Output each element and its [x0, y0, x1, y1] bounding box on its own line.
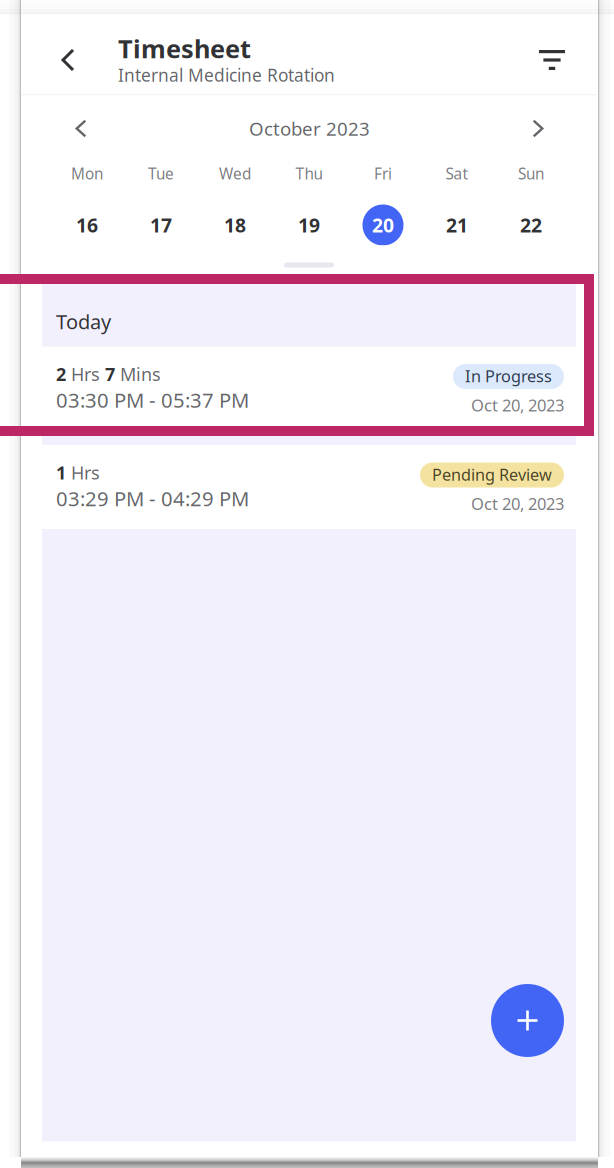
staticText: Hrs [66, 362, 100, 386]
button[interactable]: Tue [124, 161, 198, 245]
button[interactable]: 1 [21, 445, 597, 529]
staticText: Tue [148, 163, 174, 184]
button[interactable]: Mon [50, 161, 124, 245]
button[interactable]: Fri [346, 161, 420, 245]
staticText: 16 [76, 212, 98, 238]
staticText: In Progress [465, 365, 552, 387]
staticText: Today [56, 308, 111, 335]
staticText: Wed [219, 163, 251, 184]
staticText: 20 [372, 212, 394, 238]
staticText: Hrs [66, 460, 100, 484]
staticText: 2 [56, 362, 66, 386]
staticText: Pending Review [432, 464, 552, 485]
staticText: Mon [71, 163, 103, 184]
staticText: October 2023 [249, 116, 370, 141]
button[interactable]: Back [45, 37, 91, 83]
button[interactable]: Wed [198, 161, 272, 245]
staticText: 17 [150, 212, 172, 238]
button[interactable]: Sat [420, 161, 494, 245]
staticText: 03:30 PM - 05:37 PM [56, 386, 249, 413]
staticText: Oct 20, 2023 [471, 394, 564, 416]
button[interactable]: Thu [272, 161, 346, 245]
staticText: Internal Medicine Rotation [118, 63, 335, 86]
button[interactable]: Filter [529, 37, 575, 83]
staticText: Fri [374, 163, 392, 184]
staticText: 22 [520, 212, 542, 238]
button[interactable]: Sun [494, 161, 568, 245]
button[interactable]: Previous month [61, 111, 101, 145]
staticText: Sat [445, 163, 468, 184]
staticText: 19 [298, 212, 320, 238]
button[interactable]: Add entry [491, 984, 564, 1057]
button[interactable]: 2 [21, 346, 597, 430]
staticText: 03:29 PM - 04:29 PM [56, 485, 249, 512]
staticText: Oct 20, 2023 [471, 492, 564, 514]
staticText: 1 [56, 460, 66, 484]
staticText: 7 [100, 362, 115, 386]
staticText: Thu [295, 163, 322, 184]
button[interactable]: Next month [518, 111, 558, 145]
staticText: 21 [446, 212, 468, 238]
staticText: Timesheet [118, 32, 251, 65]
staticText: Sun [518, 163, 544, 184]
staticText: Mins [115, 362, 161, 386]
staticText: 18 [224, 212, 246, 238]
